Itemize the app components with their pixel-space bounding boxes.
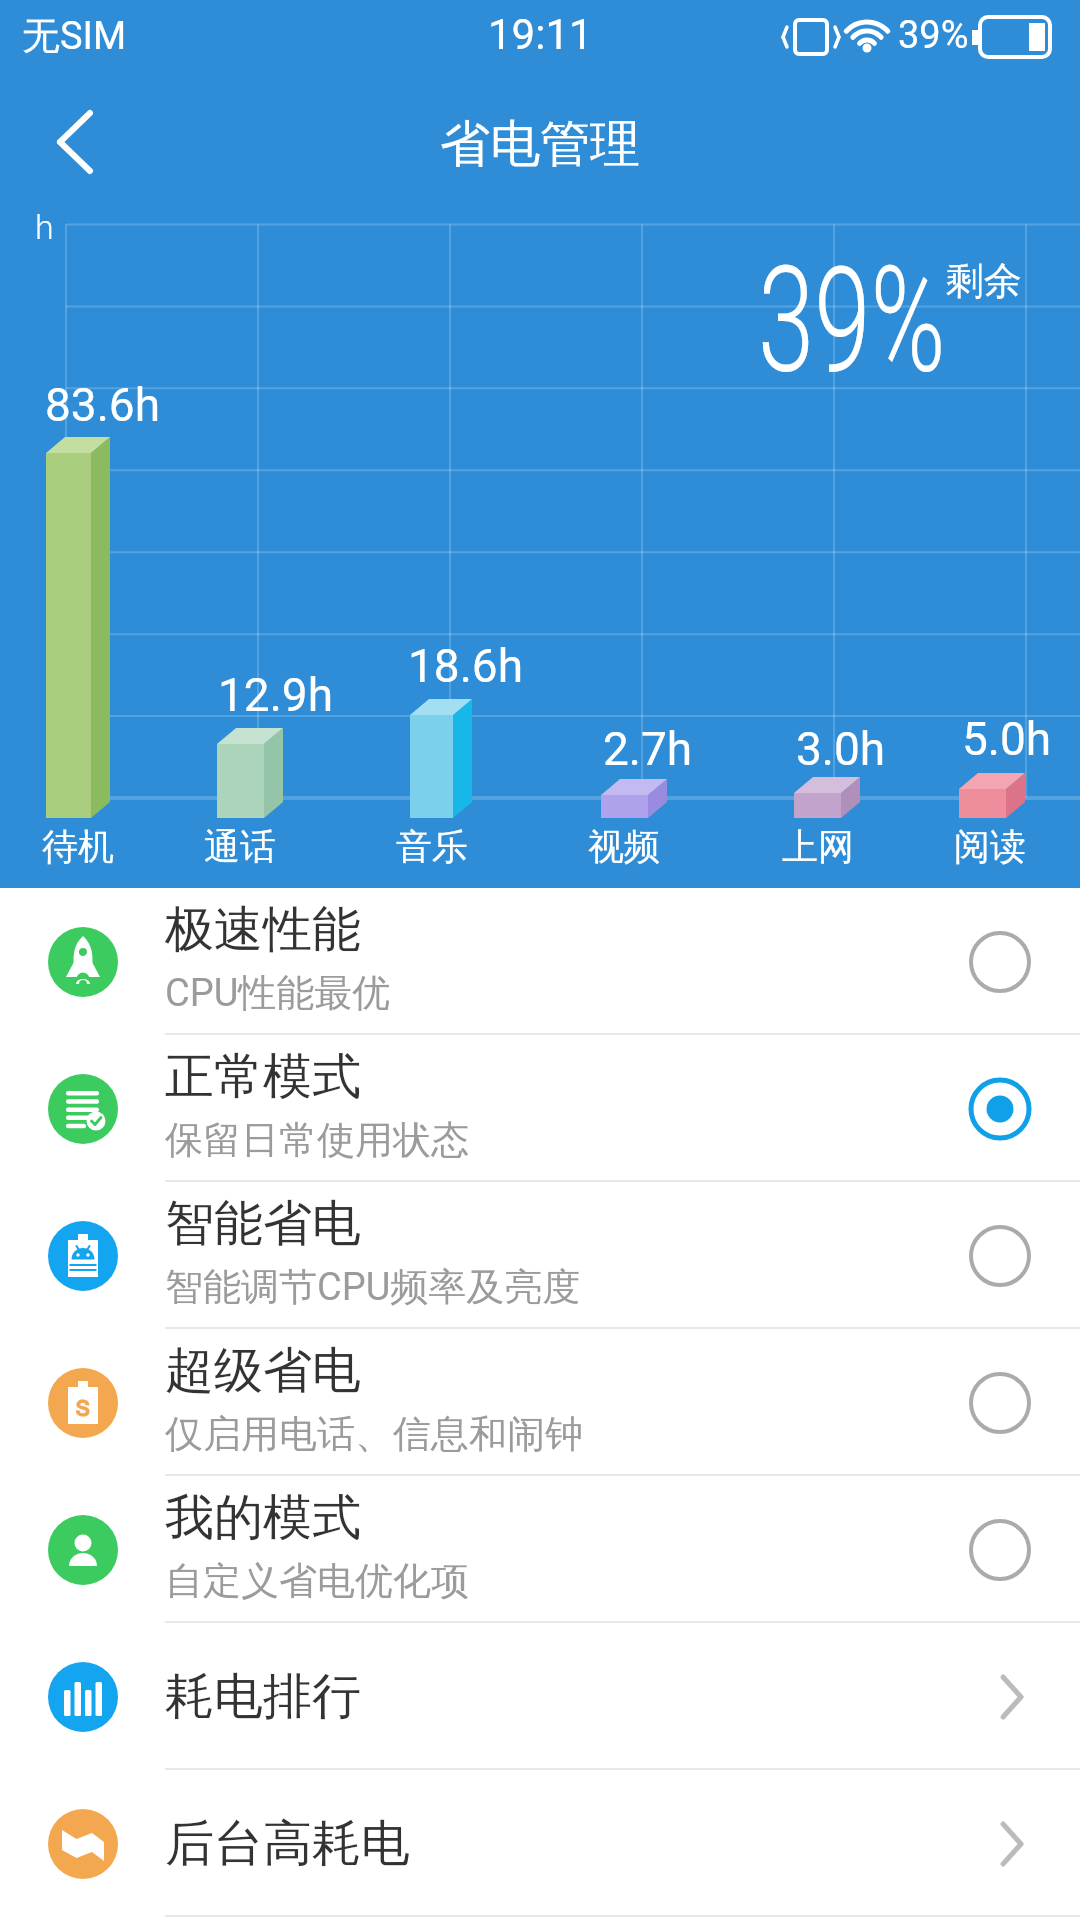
button[interactable]: s (0, 1329, 1080, 1476)
button[interactable]: 智能省电 (0, 1182, 1080, 1329)
staticText: 我的模式 (165, 1487, 361, 1549)
staticText: CPU性能最优 (165, 969, 391, 1017)
staticText: 上网 (782, 824, 854, 869)
staticText: 通话 (204, 824, 276, 869)
staticText: 19:11 (488, 10, 593, 59)
staticText: 3.0h (796, 722, 886, 776)
button[interactable]: 我的模式 (0, 1476, 1080, 1623)
staticText: 超级省电 (165, 1340, 361, 1402)
staticText: 待机 (42, 824, 114, 869)
staticText: 正常模式 (165, 1046, 361, 1108)
staticText: 保留日常使用状态 (165, 1116, 469, 1164)
staticText: 后台高耗电 (165, 1813, 410, 1875)
staticText: 阅读 (954, 824, 1026, 869)
staticText: 耗电排行 (165, 1666, 361, 1728)
staticText: 5.0h (962, 712, 1052, 766)
staticText: 83.6h (45, 378, 161, 432)
staticText: 39% (898, 13, 969, 58)
staticText: 省电管理 (440, 113, 640, 176)
staticText: 2.7h (603, 722, 693, 776)
staticText: h (35, 207, 54, 247)
button[interactable] (30, 100, 120, 186)
staticText: 自定义省电优化项 (165, 1557, 469, 1605)
staticText: 39% (758, 235, 946, 407)
button[interactable]: 后台高耗电 (0, 1770, 1080, 1917)
staticText: 剩余 (946, 257, 1022, 305)
staticText: 视频 (588, 824, 660, 869)
button[interactable]: 正常模式 (0, 1035, 1080, 1182)
button[interactable]: 极速性能 (0, 888, 1080, 1035)
staticText: s (75, 1388, 91, 1423)
staticText: 仅启用电话、信息和闹钟 (165, 1410, 583, 1458)
staticText: 极速性能 (165, 899, 361, 961)
staticText: 18.6h (408, 639, 524, 693)
staticText: 智能省电 (165, 1193, 361, 1255)
staticText: 12.9h (218, 668, 334, 722)
button[interactable]: 耗电排行 (0, 1623, 1080, 1770)
staticText: 无SIM (22, 12, 127, 60)
staticText: 音乐 (396, 824, 468, 869)
staticText: 智能调节CPU频率及亮度 (165, 1263, 581, 1311)
